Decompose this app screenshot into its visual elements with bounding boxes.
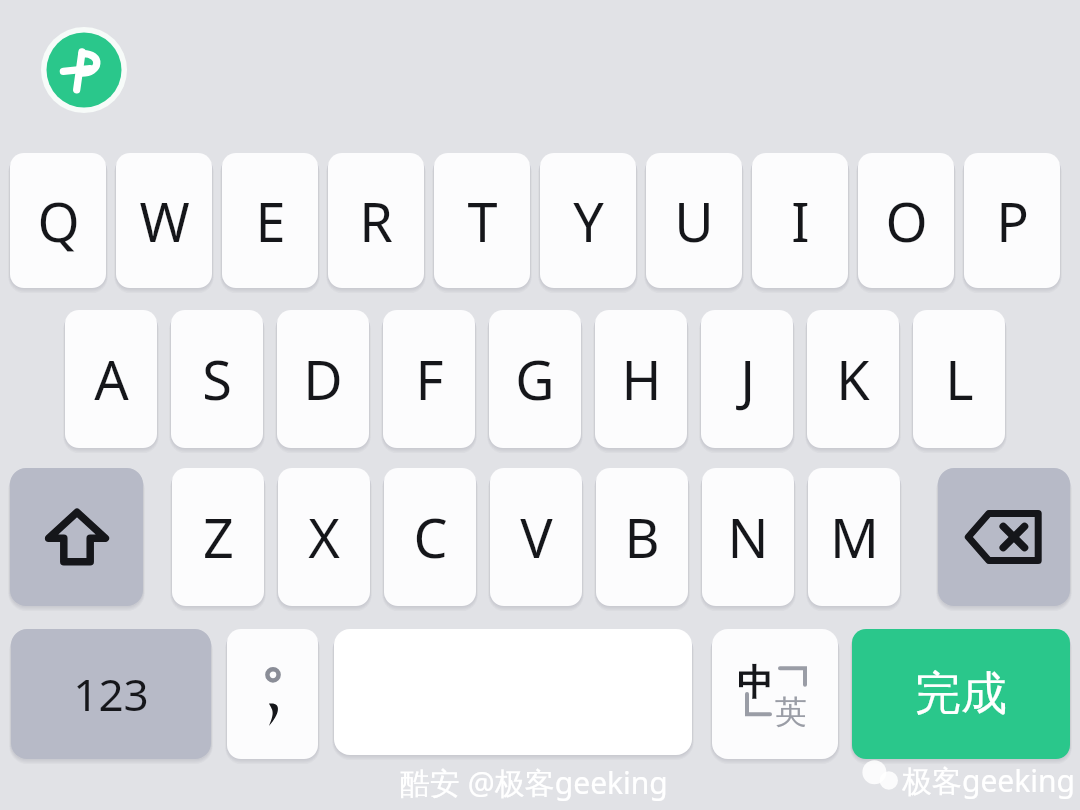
button[interactable]: Shift	[10, 468, 143, 606]
staticText: L	[945, 342, 974, 416]
staticText: 中	[737, 660, 773, 705]
button[interactable]: G	[489, 310, 581, 448]
button[interactable]: App logo	[41, 27, 127, 113]
button[interactable]: W	[116, 153, 212, 288]
button[interactable]: Switch Chinese English	[712, 629, 838, 759]
staticText: O	[885, 184, 928, 258]
button[interactable]: O	[858, 153, 954, 288]
button[interactable]: J	[701, 310, 793, 448]
staticText: W	[139, 184, 190, 258]
staticText: Q	[37, 184, 80, 258]
staticText: 123	[73, 664, 149, 724]
staticText: G	[515, 342, 555, 416]
button[interactable]: Semicolon	[227, 629, 318, 759]
staticText: K	[836, 342, 870, 416]
staticText: Z	[203, 500, 234, 574]
button[interactable]: M	[808, 468, 900, 606]
staticText: F	[415, 342, 444, 416]
staticText: A	[94, 342, 129, 416]
staticText: P	[996, 184, 1029, 258]
staticText: X	[308, 500, 340, 574]
button[interactable]: Backspace	[938, 468, 1070, 606]
staticText: R	[359, 184, 393, 258]
staticText: J	[740, 342, 755, 416]
button[interactable]: S	[171, 310, 263, 448]
button[interactable]: L	[913, 310, 1005, 448]
staticText: S	[202, 342, 232, 416]
staticText: E	[255, 184, 286, 258]
button[interactable]: A	[65, 310, 157, 448]
button[interactable]: F	[383, 310, 475, 448]
button[interactable]: Z	[172, 468, 264, 606]
staticText: H	[621, 342, 662, 416]
staticText: C	[413, 500, 448, 574]
staticText: B	[624, 500, 660, 574]
button[interactable]: Q	[10, 153, 106, 288]
button[interactable]: D	[277, 310, 369, 448]
button[interactable]: T	[434, 153, 530, 288]
button[interactable]: P	[964, 153, 1060, 288]
staticText: V	[520, 500, 553, 574]
button[interactable]: V	[490, 468, 582, 606]
staticText: Y	[573, 184, 604, 258]
staticText: U	[674, 184, 714, 258]
staticText: 完成	[915, 665, 1007, 723]
button[interactable]: Y	[540, 153, 636, 288]
staticText: 极客geeking	[902, 760, 1076, 801]
button[interactable]: U	[646, 153, 742, 288]
button[interactable]: H	[595, 310, 687, 448]
staticText: T	[467, 184, 498, 258]
button[interactable]: N	[702, 468, 794, 606]
button[interactable]: 完成	[852, 629, 1070, 759]
button[interactable]: C	[384, 468, 476, 606]
staticText: 酷安 @极客geeking	[400, 762, 668, 803]
button[interactable]: K	[807, 310, 899, 448]
button[interactable]: X	[278, 468, 370, 606]
button[interactable]: E	[222, 153, 318, 288]
staticText: N	[727, 500, 769, 574]
staticText: M	[830, 500, 879, 574]
button[interactable]: B	[596, 468, 688, 606]
button[interactable]: R	[328, 153, 424, 288]
button[interactable]: I	[752, 153, 848, 288]
staticText: 英	[775, 692, 807, 732]
staticText: D	[303, 342, 343, 416]
button[interactable]: 123	[11, 629, 211, 759]
staticText: I	[791, 184, 810, 258]
